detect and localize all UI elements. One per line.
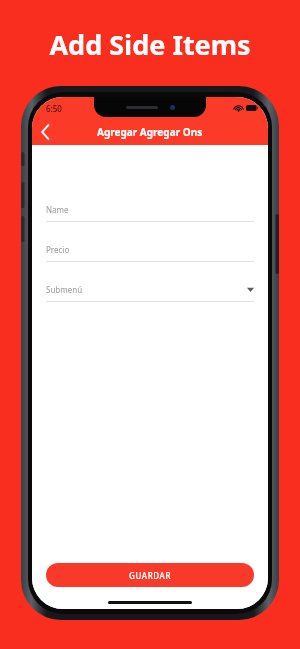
staticText: Add Side Items xyxy=(49,26,251,63)
button[interactable]: Name xyxy=(46,202,254,222)
button[interactable]: Back xyxy=(32,119,58,145)
button[interactable]: Submenú xyxy=(46,282,254,302)
button[interactable]: GUARDAR xyxy=(46,563,254,587)
button[interactable]: Precio xyxy=(46,242,254,262)
staticText: Name xyxy=(46,204,69,215)
staticText: Agregar Agregar Ons xyxy=(97,125,203,139)
staticText: Submenú xyxy=(46,284,83,295)
staticText: Precio xyxy=(46,244,70,255)
staticText: GUARDAR xyxy=(129,570,172,581)
staticText: 6:50 xyxy=(46,103,62,114)
